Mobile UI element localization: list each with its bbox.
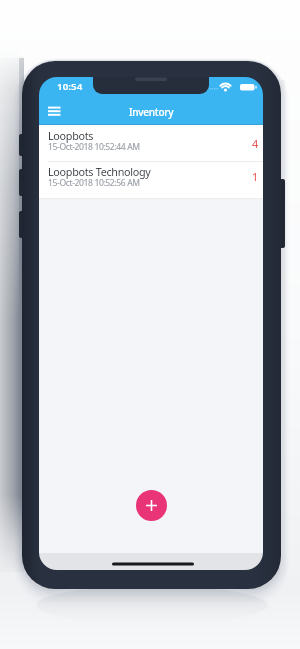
button[interactable] xyxy=(44,100,66,122)
staticText: 15-Oct-2018 10:52:56 AM xyxy=(48,177,140,189)
staticText: Inventory xyxy=(129,105,174,119)
button[interactable]: Loopbots xyxy=(39,125,263,162)
staticText: Loopbots Technology xyxy=(48,164,151,179)
staticText: Loopbots xyxy=(48,128,94,143)
staticText: 1 xyxy=(252,169,259,184)
staticText: 15-Oct-2018 10:52:44 AM xyxy=(48,141,140,153)
button[interactable] xyxy=(136,490,167,521)
staticText: 10:54 xyxy=(57,80,83,93)
staticText: 4 xyxy=(252,136,259,151)
button[interactable]: Loopbots Technology xyxy=(39,162,263,199)
